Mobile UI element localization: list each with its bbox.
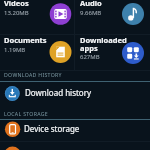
staticText: Audio <box>80 0 102 8</box>
staticText: 9.66MB <box>80 9 102 17</box>
staticText: Documents <box>4 35 47 45</box>
button[interactable]: Download history <box>0 82 150 108</box>
staticText: 13.20MB <box>4 9 29 17</box>
staticText: LOCAL STORAGE <box>4 110 49 117</box>
staticText: Device storage <box>24 123 80 134</box>
button[interactable]: Documents <box>0 35 74 70</box>
staticText: Videos <box>4 0 29 8</box>
staticText: apps <box>80 43 98 53</box>
staticText: 1.19MB <box>4 46 26 54</box>
staticText: Downloaded <box>80 35 127 45</box>
staticText: DOWNLOAD HISTORY <box>4 71 62 78</box>
button[interactable]: Videos <box>0 0 74 34</box>
button[interactable]: Downloaded <box>75 35 150 70</box>
button[interactable] <box>0 142 150 150</box>
staticText: 627MB <box>80 53 100 61</box>
staticText: Download history <box>25 87 92 98</box>
button[interactable]: Audio <box>75 0 150 34</box>
button[interactable]: Device storage <box>0 120 150 141</box>
